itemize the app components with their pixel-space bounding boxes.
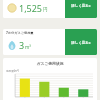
button[interactable]: 詳しく見る»: [65, 0, 97, 18]
staticText: ガスご使用状況: [3, 61, 97, 66]
staticText: 7月分ガスご使用量: [6, 31, 34, 35]
staticText: m³: [25, 44, 31, 50]
staticText: 円: [43, 7, 48, 13]
staticText: 1,525: [19, 2, 43, 14]
button[interactable]: 詳しく見る»: [65, 29, 97, 55]
staticText: 詳しく見る»: [71, 40, 91, 45]
staticText: 使用量(m³): [6, 69, 19, 73]
staticText: 3: [19, 39, 25, 51]
staticText: 詳しく見る»: [71, 3, 91, 8]
